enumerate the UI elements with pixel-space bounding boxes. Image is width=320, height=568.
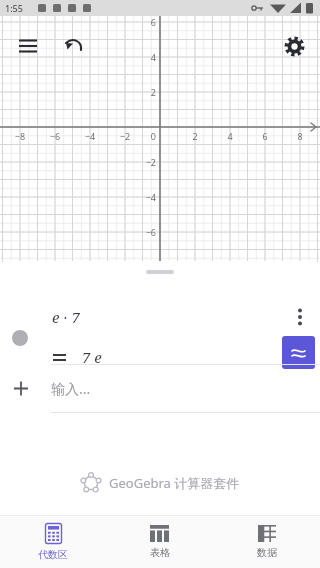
staticText: −2 <box>115 130 135 142</box>
staticText: 0 <box>144 130 156 142</box>
staticText: 表格 <box>150 546 170 559</box>
staticText: −2 <box>130 156 156 168</box>
button[interactable]: Approximate <box>282 336 315 369</box>
staticText: e · 7 <box>52 307 80 327</box>
staticText: −8 <box>10 130 30 142</box>
button[interactable]: 数据 <box>213 516 320 568</box>
staticText: −4 <box>130 191 156 203</box>
staticText: 1:55 <box>5 2 23 14</box>
staticText: 6 <box>255 130 275 142</box>
staticText: 2 <box>185 130 205 142</box>
button[interactable]: 表格 <box>106 516 213 568</box>
staticText: 7 e <box>82 347 102 367</box>
button[interactable]: 代数区 <box>0 516 106 568</box>
button[interactable]: Settings <box>274 26 314 66</box>
staticText: −6 <box>45 130 65 142</box>
staticText: 8 <box>290 130 310 142</box>
staticText: −6 <box>130 226 156 238</box>
staticText: 4 <box>220 130 240 142</box>
button[interactable]: Undo <box>54 26 94 66</box>
button[interactable]: e · 7 <box>0 277 320 364</box>
staticText: 代数区 <box>38 548 68 561</box>
button[interactable]: 输入... <box>0 365 320 412</box>
staticText: 4 <box>130 51 156 63</box>
staticText: −4 <box>80 130 100 142</box>
staticText: 2 <box>130 86 156 98</box>
staticText: GeoGebra 计算器套件 <box>109 474 240 492</box>
staticText: 6 <box>130 16 156 28</box>
staticText: 输入... <box>51 379 91 398</box>
button[interactable]: Menu <box>8 26 48 66</box>
staticText: 数据 <box>257 546 277 559</box>
button[interactable]: More options <box>284 301 316 333</box>
